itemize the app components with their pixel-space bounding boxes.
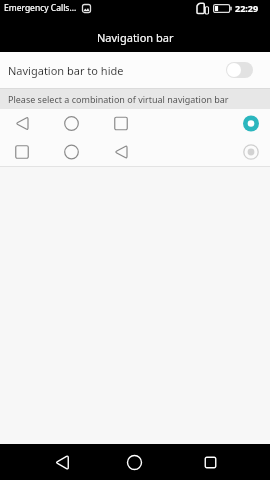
button[interactable]	[0, 138, 270, 166]
staticText: Navigation bar	[97, 30, 174, 45]
staticText: Navigation bar to hide	[8, 63, 124, 78]
button[interactable]	[110, 444, 158, 480]
button[interactable]	[0, 109, 270, 138]
staticText: Emergency Calls...	[4, 2, 77, 14]
staticText: Please select a combination of virtual n…	[8, 93, 229, 105]
button[interactable]	[37, 444, 85, 480]
staticText: 22:29	[235, 2, 259, 14]
button[interactable]	[226, 62, 253, 78]
button[interactable]: Navigation bar to hide	[0, 52, 270, 88]
button[interactable]	[186, 444, 234, 480]
